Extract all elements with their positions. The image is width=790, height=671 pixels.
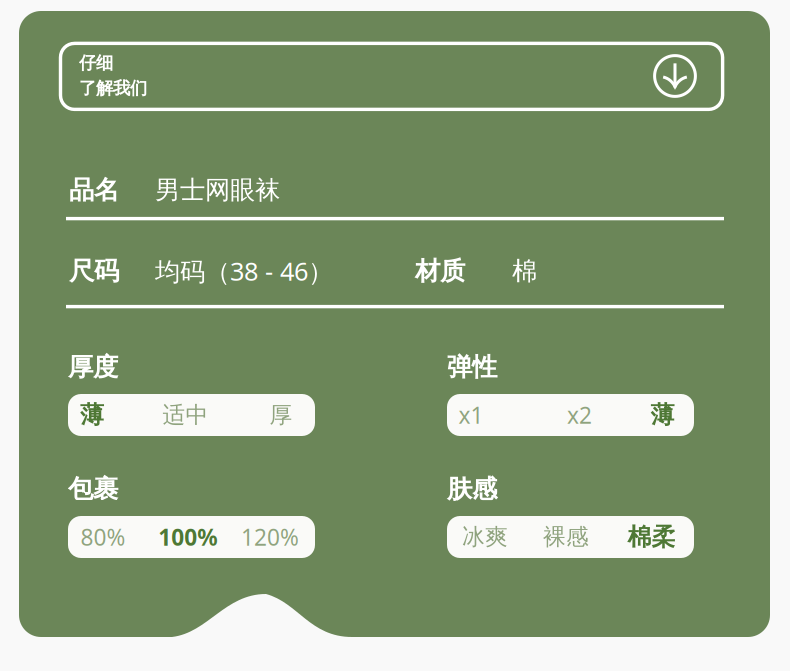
staticText: 裸感 bbox=[543, 523, 589, 551]
button[interactable]: x2 bbox=[538, 394, 621, 436]
button[interactable]: 薄 bbox=[631, 394, 694, 436]
button[interactable]: 仔细 bbox=[60, 43, 628, 109]
staticText: x1 bbox=[458, 400, 483, 430]
staticText: 厚 bbox=[269, 401, 292, 429]
staticText: 均码（38 - 46） bbox=[155, 254, 333, 288]
staticText: 120% bbox=[241, 522, 299, 552]
button[interactable]: 棉柔 bbox=[609, 516, 694, 558]
staticText: 品名 bbox=[69, 174, 119, 205]
staticText: 适中 bbox=[162, 401, 208, 429]
button[interactable]: 120% bbox=[229, 516, 311, 558]
staticText: 弹性 bbox=[447, 351, 497, 382]
button[interactable]: 80% bbox=[68, 516, 138, 558]
staticText: 棉 bbox=[512, 255, 537, 286]
staticText: 肤感 bbox=[447, 473, 497, 504]
staticText: 材质 bbox=[415, 255, 465, 286]
staticText: 薄 bbox=[650, 400, 674, 430]
button[interactable]: Download bbox=[653, 54, 697, 98]
button[interactable]: 厚 bbox=[247, 394, 315, 436]
staticText: x2 bbox=[567, 400, 592, 430]
button[interactable]: 适中 bbox=[139, 394, 232, 436]
staticText: 包裹 bbox=[68, 473, 118, 504]
button[interactable]: 裸感 bbox=[525, 516, 606, 558]
button[interactable]: x1 bbox=[447, 394, 495, 436]
staticText: 冰爽 bbox=[462, 523, 508, 551]
staticText: 男士网眼袜 bbox=[155, 174, 280, 205]
staticText: 了解我们 bbox=[79, 78, 147, 99]
staticText: 100% bbox=[158, 522, 217, 552]
button[interactable]: 薄 bbox=[68, 394, 116, 436]
staticText: 棉柔 bbox=[627, 522, 675, 552]
staticText: 厚度 bbox=[68, 351, 118, 382]
button[interactable]: 100% bbox=[147, 516, 229, 558]
button[interactable]: 冰爽 bbox=[447, 516, 523, 558]
staticText: 仔细 bbox=[79, 52, 113, 74]
staticText: 薄 bbox=[80, 400, 104, 430]
staticText: 尺码 bbox=[69, 255, 119, 286]
staticText: 80% bbox=[80, 522, 125, 552]
